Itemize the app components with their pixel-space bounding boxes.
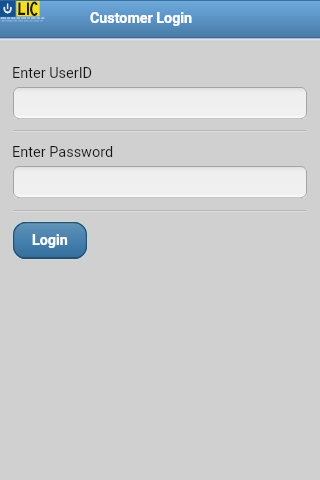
other: LIC logo	[0, 0, 41, 24]
staticText: Customer Login	[90, 10, 193, 27]
button[interactable]: Login	[13, 222, 87, 259]
staticText: Enter Password	[12, 144, 114, 161]
button[interactable]	[13, 87, 307, 119]
button[interactable]	[13, 166, 307, 198]
staticText: Enter UserID	[12, 65, 93, 82]
staticText: Login	[32, 232, 68, 249]
